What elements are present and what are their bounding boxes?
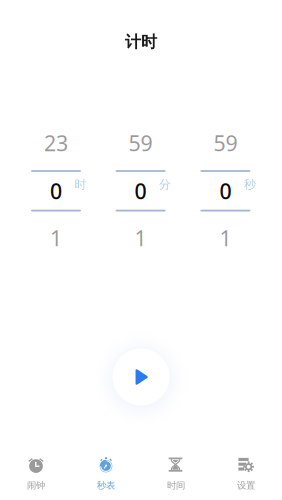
staticText: 59 xyxy=(129,129,153,157)
staticText: 设置 xyxy=(237,480,255,491)
button[interactable]: 闹钟 xyxy=(1,446,71,500)
staticText: 时间 xyxy=(167,480,185,491)
button[interactable]: Start xyxy=(105,341,177,413)
staticText: 0 xyxy=(219,177,231,205)
staticText: 1 xyxy=(219,224,231,252)
staticText: 秒表 xyxy=(97,480,115,491)
staticText: 闹钟 xyxy=(27,480,45,491)
staticText: 23 xyxy=(44,129,68,157)
staticText: 1 xyxy=(50,224,62,252)
staticText: 0 xyxy=(135,177,147,205)
staticText: 计时 xyxy=(125,32,157,52)
button[interactable]: 时间 xyxy=(141,446,211,500)
button[interactable]: 设置 xyxy=(211,446,281,500)
staticText: 时 xyxy=(74,177,86,192)
staticText: 秒 xyxy=(244,177,256,192)
staticText: 59 xyxy=(213,129,237,157)
button[interactable]: 秒表 xyxy=(71,446,141,500)
staticText: 1 xyxy=(135,224,147,252)
staticText: 分 xyxy=(159,177,171,192)
staticText: 0 xyxy=(50,177,62,205)
